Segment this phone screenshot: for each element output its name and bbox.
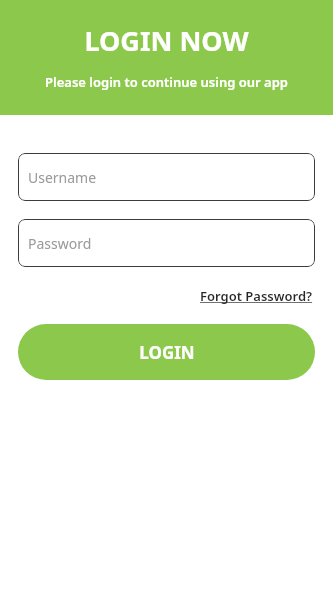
staticText: Please login to continue using our app bbox=[45, 73, 288, 91]
button[interactable]: Login bbox=[18, 324, 315, 380]
staticText: Username bbox=[28, 168, 97, 187]
button[interactable]: Username bbox=[18, 153, 315, 201]
button[interactable]: Password bbox=[18, 219, 315, 267]
staticText: LOGIN NOW bbox=[84, 22, 249, 59]
staticText: Forgot Password? bbox=[200, 287, 313, 305]
button[interactable]: Forgot Password? bbox=[198, 285, 315, 307]
staticText: Password bbox=[28, 234, 92, 253]
staticText: LOGIN bbox=[139, 341, 195, 364]
